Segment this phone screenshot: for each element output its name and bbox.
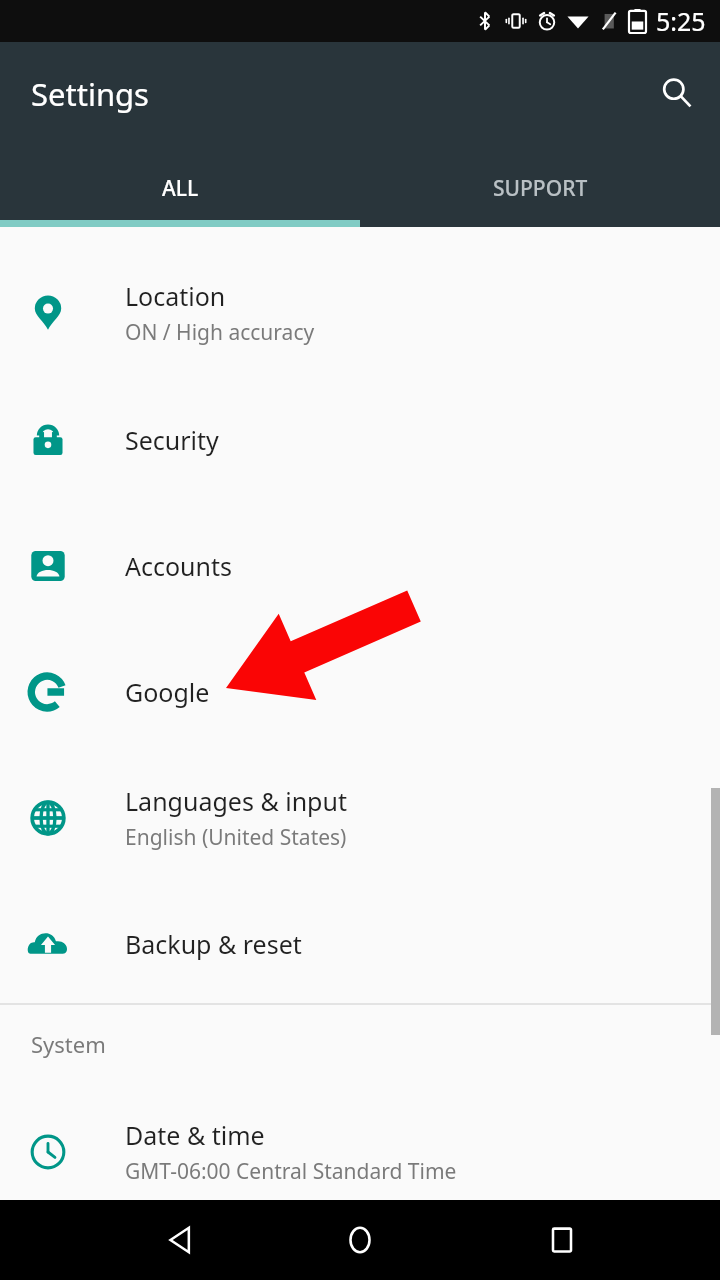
staticText: ALL bbox=[162, 174, 199, 203]
button[interactable]: Backup & reset bbox=[0, 881, 720, 1007]
staticText: Google bbox=[125, 675, 210, 709]
button[interactable]: Recents bbox=[502, 1200, 622, 1280]
button[interactable]: Search bbox=[652, 68, 702, 118]
button[interactable]: Languages & input bbox=[0, 755, 720, 881]
button[interactable]: Security bbox=[0, 377, 720, 503]
staticText: 5:25 bbox=[656, 4, 706, 38]
button[interactable]: Location bbox=[0, 250, 720, 376]
staticText: Languages & input bbox=[125, 784, 347, 818]
staticText: Location bbox=[125, 279, 226, 313]
button[interactable]: SUPPORT bbox=[360, 154, 720, 227]
button[interactable]: Google bbox=[0, 629, 720, 755]
staticText: System bbox=[31, 1029, 106, 1059]
button[interactable]: Date & time bbox=[0, 1089, 720, 1215]
button[interactable]: Back bbox=[120, 1200, 240, 1280]
staticText: ON / High accuracy bbox=[125, 318, 315, 347]
staticText: Security bbox=[125, 423, 219, 457]
button[interactable]: ALL bbox=[0, 154, 360, 227]
staticText: Date & time bbox=[125, 1118, 265, 1152]
staticText: Backup & reset bbox=[125, 927, 302, 961]
staticText: English (United States) bbox=[125, 823, 347, 852]
staticText: Accounts bbox=[125, 549, 233, 583]
staticText: GMT-06:00 Central Standard Time bbox=[125, 1157, 457, 1186]
staticText: SUPPORT bbox=[493, 174, 588, 203]
button[interactable]: Accounts bbox=[0, 503, 720, 629]
button[interactable]: Home bbox=[300, 1200, 420, 1280]
staticText: Settings bbox=[31, 73, 149, 115]
